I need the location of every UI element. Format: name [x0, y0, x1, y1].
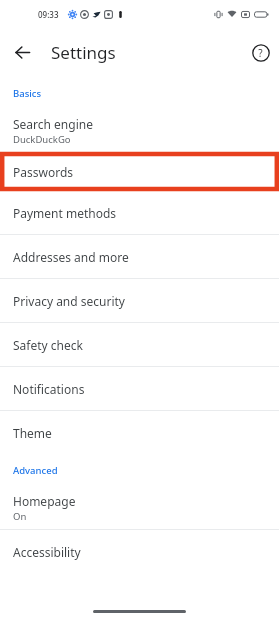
- button[interactable]: Addresses and more: [0, 235, 279, 278]
- staticText: Advanced: [13, 464, 58, 477]
- button[interactable]: Notifications: [0, 367, 279, 410]
- staticText: 09:33: [38, 9, 59, 20]
- button[interactable]: Search engine: [0, 110, 279, 152]
- button[interactable]: Help: [245, 37, 276, 68]
- staticText: ?: [258, 46, 263, 60]
- staticText: Basics: [13, 87, 42, 100]
- staticText: Notifications: [13, 381, 85, 397]
- button[interactable]: Back: [7, 37, 38, 68]
- button[interactable]: Homepage: [0, 487, 279, 529]
- staticText: Privacy and security: [13, 293, 125, 309]
- staticText: Addresses and more: [13, 249, 129, 265]
- button[interactable]: Passwords: [0, 152, 279, 191]
- staticText: Homepage: [13, 493, 76, 509]
- button[interactable]: Payment methods: [0, 191, 279, 234]
- button[interactable]: Privacy and security: [0, 279, 279, 322]
- staticText: On: [13, 510, 27, 523]
- staticText: Theme: [13, 425, 52, 441]
- staticText: Settings: [51, 41, 116, 64]
- button[interactable]: Safety check: [0, 323, 279, 366]
- staticText: Payment methods: [13, 205, 117, 221]
- staticText: DuckDuckGo: [13, 133, 71, 146]
- staticText: Safety check: [13, 337, 83, 353]
- button[interactable]: Theme: [0, 411, 279, 454]
- button[interactable]: Accessibility: [0, 530, 279, 573]
- staticText: Passwords: [13, 164, 74, 180]
- staticText: Search engine: [13, 116, 93, 132]
- staticText: Accessibility: [13, 544, 81, 560]
